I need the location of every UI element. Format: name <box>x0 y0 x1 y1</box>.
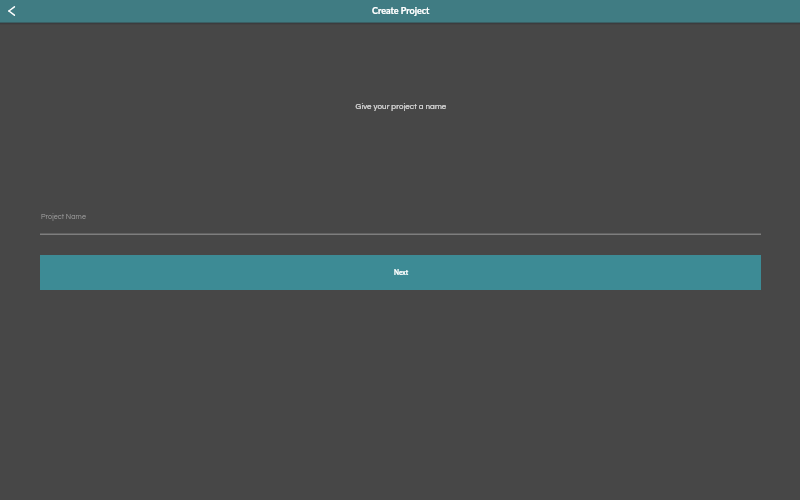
staticText: Project Name <box>41 213 86 220</box>
button[interactable]: Back <box>0 0 22 22</box>
staticText: Give your project a name <box>1 103 800 111</box>
staticText: Next <box>394 269 409 277</box>
button[interactable]: Next <box>40 255 761 290</box>
staticText: Create Project <box>372 5 430 16</box>
button[interactable]: Project Name <box>0 213 800 235</box>
